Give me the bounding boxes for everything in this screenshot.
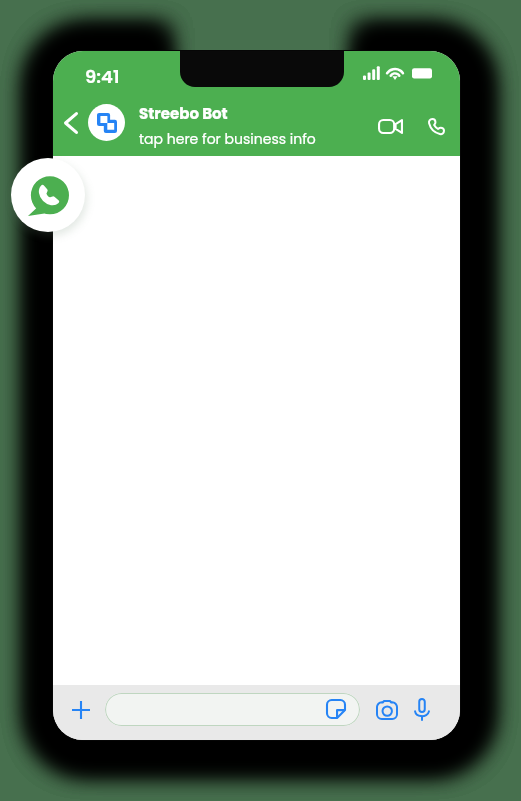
button[interactable]: Voice message bbox=[403, 690, 441, 729]
button[interactable]: Sticker bbox=[325, 698, 347, 720]
staticText: tap here for business info bbox=[139, 129, 316, 149]
button[interactable]: Attach bbox=[60, 690, 101, 729]
staticText: Streebo Bot bbox=[139, 103, 228, 124]
button[interactable]: Back bbox=[55, 103, 87, 143]
button[interactable]: Camera bbox=[367, 690, 407, 729]
button[interactable]: Video call bbox=[368, 105, 413, 147]
button[interactable]: WhatsApp bbox=[11, 158, 85, 232]
staticText: 9:41 bbox=[85, 64, 120, 89]
button[interactable]: Voice call bbox=[417, 106, 456, 147]
button[interactable] bbox=[105, 693, 360, 726]
